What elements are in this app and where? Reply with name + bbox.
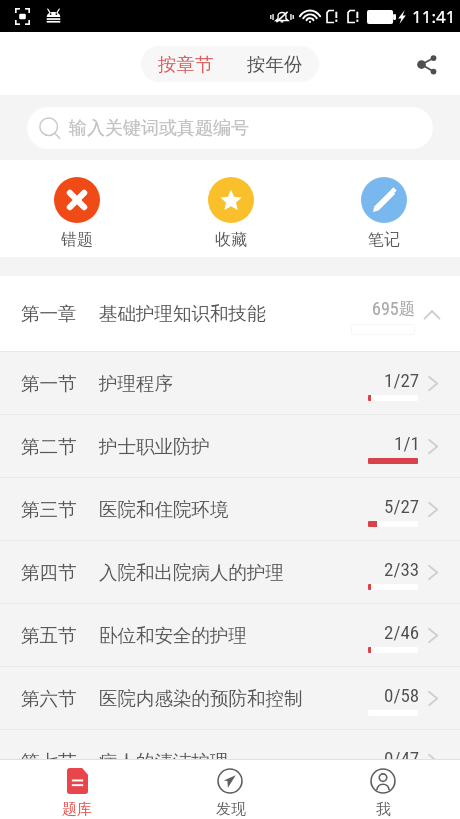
staticText: 第六节	[21, 687, 77, 710]
staticText: 11:41	[412, 5, 456, 28]
button[interactable]: 输入关键词或真题编号	[27, 107, 433, 149]
staticText: 我	[376, 800, 391, 819]
button[interactable]: 第三节	[0, 478, 460, 540]
staticText: 第三节	[21, 498, 77, 521]
button[interactable]: 错题	[0, 160, 154, 257]
button[interactable]: 按章节	[141, 46, 230, 82]
button[interactable]: 按年份	[230, 46, 319, 82]
staticText: 医院和住院环境	[99, 498, 229, 521]
staticText: 按章节	[158, 53, 214, 76]
button[interactable]: 第四节	[0, 541, 460, 603]
staticText: 0/47	[384, 747, 420, 759]
staticText: 笔记	[368, 230, 400, 250]
button[interactable]: 第一章	[0, 276, 460, 351]
staticText: 基础护理知识和技能	[99, 302, 266, 325]
button[interactable]: 第七节	[0, 730, 460, 759]
staticText: 入院和出院病人的护理	[99, 561, 284, 584]
staticText: 发现	[216, 800, 246, 819]
staticText: 第一节	[21, 372, 77, 395]
staticText: 第七节	[21, 750, 77, 759]
staticText: 5/27	[384, 495, 420, 517]
button[interactable]: 收藏	[154, 160, 307, 257]
staticText: 护理程序	[99, 372, 173, 395]
staticText: 题	[399, 299, 415, 319]
button[interactable]: 第五节	[0, 604, 460, 666]
button[interactable]: 题库	[0, 760, 154, 819]
button[interactable]: 发现	[154, 760, 307, 819]
button[interactable]: 第二节	[0, 415, 460, 477]
staticText: 错题	[61, 230, 93, 250]
staticText: 1/27	[384, 369, 420, 391]
staticText: 护士职业防护	[99, 435, 210, 458]
staticText: 医院内感染的预防和控制	[99, 687, 303, 710]
staticText: 2/46	[384, 621, 420, 643]
staticText: 0/58	[384, 684, 420, 706]
staticText: 收藏	[215, 230, 247, 250]
button[interactable]: Share	[404, 42, 448, 86]
staticText: 第一章	[21, 302, 77, 325]
staticText: 第四节	[21, 561, 77, 584]
staticText: 按年份	[247, 53, 303, 76]
button[interactable]: 我	[307, 760, 460, 819]
button[interactable]: 笔记	[307, 160, 460, 257]
staticText: 第二节	[21, 435, 77, 458]
staticText: 第五节	[21, 624, 77, 647]
button[interactable]: 第一节	[0, 352, 460, 414]
staticText: 病人的清洁护理	[99, 750, 229, 759]
button[interactable]: 第六节	[0, 667, 460, 729]
staticText: 输入关键词或真题编号	[69, 117, 249, 140]
staticText: 1/1	[394, 432, 420, 454]
staticText: 695	[372, 298, 399, 319]
staticText: 2/33	[384, 558, 420, 580]
staticText: 题库	[62, 800, 92, 819]
staticText: 卧位和安全的护理	[99, 624, 247, 647]
